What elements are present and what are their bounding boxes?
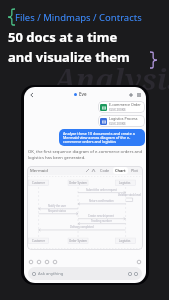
button[interactable]: New chat	[127, 91, 134, 98]
staticText: Validate stock level	[118, 193, 142, 197]
staticText: Logistics	[119, 181, 131, 185]
staticText: XLSX 200KB	[109, 108, 126, 112]
staticText: Customer	[32, 239, 45, 243]
staticText: and visualize them	[8, 48, 130, 66]
button[interactable]: Copy	[28, 259, 34, 265]
staticText: OK, the first sequence diagram of e-comm…	[28, 149, 143, 160]
staticText: Analysis	[54, 59, 169, 98]
staticText: Create new shipment	[88, 214, 114, 218]
button[interactable]: Dislike	[52, 259, 58, 265]
button[interactable]: Menu	[135, 91, 142, 98]
staticText: Notify the user	[48, 204, 67, 208]
button[interactable]: Logistics Process	[98, 115, 145, 127]
button[interactable]: Code	[98, 167, 112, 174]
button[interactable]: E-commerce Order	[98, 101, 145, 113]
button[interactable]: Expand	[85, 168, 90, 173]
staticText: Analyze these 10 documents and create a …	[63, 131, 141, 144]
button[interactable]: Back	[28, 91, 35, 98]
staticText: Logistics Process	[109, 116, 138, 121]
staticText: Delivery completed	[70, 225, 94, 229]
staticText: Order System	[69, 181, 87, 185]
staticText: Order System	[69, 239, 87, 243]
staticText: 50 docs at a time	[8, 28, 118, 46]
staticText: Ask anything	[38, 271, 64, 277]
staticText: Plot	[131, 168, 138, 173]
staticText: Mermaid	[30, 168, 48, 174]
button[interactable]: Ask anything	[28, 267, 142, 280]
staticText: Chart	[115, 168, 126, 173]
button[interactable]: More	[136, 259, 142, 265]
staticText: Code	[100, 168, 110, 173]
staticText: E-commerce Order	[109, 102, 141, 107]
button[interactable]: Plot	[129, 167, 140, 174]
button[interactable]: Chart	[113, 167, 128, 174]
staticText: Request status	[48, 209, 67, 213]
staticText: Submit the order request	[86, 188, 117, 192]
button[interactable]: Regenerate	[36, 259, 42, 265]
staticText: Eve	[79, 91, 87, 97]
button[interactable]: Like	[44, 259, 50, 265]
staticText: Logistics	[119, 239, 131, 243]
staticText: Customer	[32, 181, 45, 185]
staticText: XLSX 200KB	[109, 122, 126, 126]
staticText: Tracking number	[91, 219, 112, 223]
staticText: Return confirmation	[89, 199, 114, 203]
staticText: Files / Mindmaps / Contracts	[15, 11, 142, 24]
button[interactable]: Download	[91, 168, 96, 173]
